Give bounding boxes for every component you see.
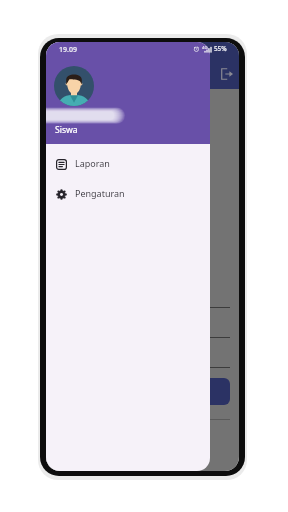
staticText: 55% bbox=[214, 44, 227, 53]
button[interactable]: Pengaturan bbox=[46, 180, 210, 209]
button[interactable] bbox=[60, 378, 230, 405]
staticText: Siswa bbox=[55, 124, 78, 136]
button[interactable]: Laporan bbox=[46, 150, 210, 179]
staticText: 4G bbox=[202, 45, 208, 51]
staticText: Laporan bbox=[75, 157, 110, 169]
button[interactable]: Logout bbox=[216, 63, 238, 85]
staticText: Pengaturan bbox=[75, 187, 125, 199]
staticText: 19.09 bbox=[59, 45, 77, 55]
